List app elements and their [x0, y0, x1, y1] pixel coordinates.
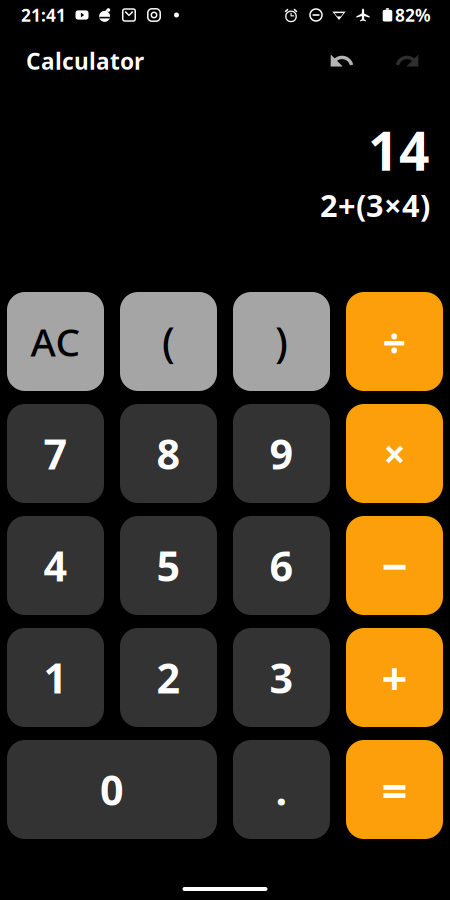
button[interactable]: ×: [346, 404, 443, 503]
button[interactable]: AC: [7, 292, 104, 391]
staticText: 5: [156, 538, 180, 593]
staticText: Calculator: [26, 46, 144, 76]
staticText: ×: [383, 428, 405, 479]
button[interactable]: 3: [233, 628, 330, 727]
button[interactable]: 9: [233, 404, 330, 503]
staticText: 21:41: [21, 3, 66, 26]
staticText: +: [381, 647, 407, 708]
button[interactable]: 4: [7, 516, 104, 615]
button[interactable]: 6: [233, 516, 330, 615]
button[interactable]: −: [346, 516, 443, 615]
button[interactable]: (: [120, 292, 217, 391]
staticText: ÷: [382, 314, 406, 369]
staticText: 3: [269, 650, 293, 705]
button[interactable]: 1: [7, 628, 104, 727]
button[interactable]: ): [233, 292, 330, 391]
button[interactable]: =: [346, 740, 443, 839]
staticText: 14: [368, 115, 430, 185]
staticText: 2+(3×4): [320, 185, 430, 225]
staticText: 0: [100, 762, 124, 817]
button[interactable]: 5: [120, 516, 217, 615]
button[interactable]: .: [233, 740, 330, 839]
staticText: 9: [269, 426, 293, 481]
staticText: 4: [43, 538, 67, 593]
button[interactable]: ÷: [346, 292, 443, 391]
button[interactable]: 7: [7, 404, 104, 503]
staticText: .: [275, 762, 287, 817]
staticText: −: [381, 535, 407, 596]
staticText: 6: [269, 538, 293, 593]
button[interactable]: 0: [7, 740, 217, 839]
staticText: AC: [30, 316, 80, 367]
button[interactable]: Redo: [381, 35, 433, 87]
button[interactable]: 8: [120, 404, 217, 503]
staticText: (: [162, 314, 175, 369]
staticText: 8: [156, 426, 180, 481]
staticText: 82%: [395, 3, 431, 26]
button[interactable]: +: [346, 628, 443, 727]
staticText: ): [275, 314, 288, 369]
staticText: 1: [43, 650, 67, 705]
staticText: 7: [43, 426, 67, 481]
button[interactable]: Undo: [316, 35, 368, 87]
staticText: =: [381, 759, 407, 820]
staticText: 2: [156, 650, 180, 705]
button[interactable]: 2: [120, 628, 217, 727]
